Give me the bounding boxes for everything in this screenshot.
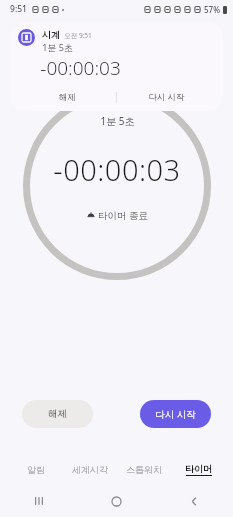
staticText: -00:00:03	[40, 55, 121, 81]
staticText: 다시 시작	[155, 408, 196, 421]
staticText: 1분 5초	[100, 114, 135, 128]
staticText: 타이머	[185, 463, 212, 474]
button[interactable]: 스톱워치	[117, 458, 171, 480]
staticText: 해제	[59, 92, 76, 103]
staticText: 해제	[48, 408, 67, 420]
staticText: 오전 9:51	[64, 31, 92, 40]
button[interactable]: 타이머	[171, 458, 225, 480]
staticText: 타이머 종료	[98, 209, 148, 222]
staticText: 스톱워치	[126, 464, 162, 475]
staticText: 1분 5초	[42, 41, 73, 53]
button[interactable]: 다시 시작	[140, 400, 211, 428]
button[interactable]: 시계	[10, 22, 223, 111]
staticText: 9:51	[10, 3, 27, 15]
staticText: 알림	[27, 464, 45, 475]
button[interactable]: Back	[155, 485, 233, 517]
staticText: 세계시각	[72, 464, 108, 475]
button[interactable]: 세계시각	[63, 458, 117, 480]
button[interactable]: 다시 시작	[117, 87, 215, 107]
button[interactable]: 해제	[22, 400, 93, 428]
button[interactable]: 알림	[8, 458, 63, 480]
staticText: 시계	[42, 29, 60, 40]
button[interactable]: 해제	[18, 87, 116, 107]
staticText: 57%	[204, 4, 220, 15]
button[interactable]: Home	[77, 485, 155, 517]
staticText: 다시 시작	[148, 91, 185, 103]
staticText: -00:00:03	[53, 150, 181, 189]
button[interactable]: Recent apps	[0, 485, 77, 517]
